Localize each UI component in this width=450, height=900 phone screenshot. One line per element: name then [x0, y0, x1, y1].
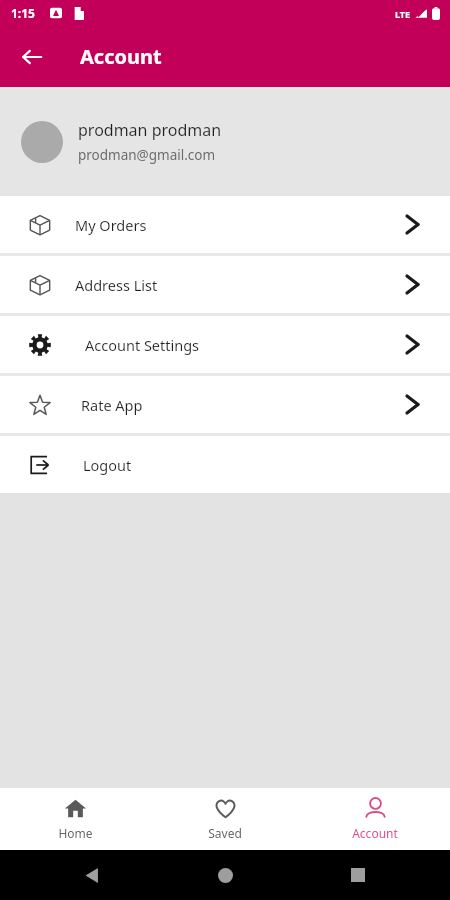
- staticText: LTE: [395, 8, 411, 20]
- staticText: Logout: [83, 455, 132, 475]
- button[interactable]: Logout: [0, 436, 450, 493]
- button[interactable]: Account Settings: [0, 316, 450, 373]
- button[interactable]: Address List: [0, 256, 450, 313]
- staticText: Home: [58, 825, 93, 841]
- staticText: My Orders: [75, 215, 147, 235]
- button[interactable]: Home: [0, 788, 150, 850]
- staticText: prodman@gmail.com: [78, 146, 216, 164]
- button[interactable]: Saved: [150, 788, 300, 850]
- button[interactable]: Rate App: [0, 376, 450, 433]
- staticText: Account: [80, 43, 162, 70]
- staticText: 1:15: [11, 5, 35, 21]
- staticText: Rate App: [81, 395, 143, 415]
- staticText: Account: [352, 825, 398, 841]
- staticText: Account Settings: [85, 335, 200, 355]
- staticText: Address List: [75, 275, 158, 295]
- button[interactable]: prodman prodman: [0, 87, 450, 196]
- button[interactable]: Back: [10, 35, 54, 79]
- button[interactable]: My Orders: [0, 196, 450, 253]
- staticText: prodman prodman: [78, 119, 222, 141]
- staticText: Saved: [208, 825, 242, 841]
- button[interactable]: Account: [300, 788, 450, 850]
